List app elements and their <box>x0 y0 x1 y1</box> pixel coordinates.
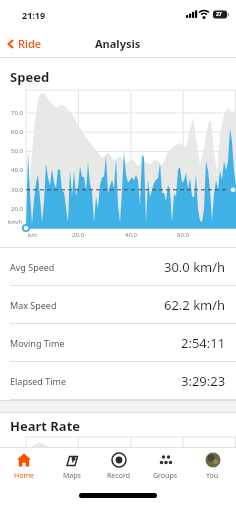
button[interactable]: Record <box>95 448 142 491</box>
staticText: Moving Time <box>10 337 65 349</box>
staticText: 30.0 km/h <box>164 258 226 276</box>
staticText: Speed <box>10 68 50 86</box>
staticText: Groups <box>153 471 178 481</box>
staticText: 60.0 <box>11 128 23 136</box>
staticText: Record <box>107 471 130 481</box>
button[interactable]: Ride <box>6 36 42 51</box>
staticText: 20.0 <box>11 205 23 213</box>
staticText: 70.0 <box>11 109 23 117</box>
staticText: Heart Rate <box>10 417 81 435</box>
button[interactable]: Max Speed <box>0 286 236 323</box>
staticText: km/h <box>8 218 23 226</box>
staticText: Elapsed Time <box>10 375 66 387</box>
staticText: Ride <box>18 36 42 51</box>
staticText: 21:19 <box>22 9 46 21</box>
button[interactable]: You <box>189 448 236 491</box>
button[interactable]: Groups <box>142 448 189 491</box>
staticText: Avg Speed <box>10 261 55 273</box>
button[interactable]: Home <box>0 448 48 491</box>
staticText: Analysis <box>95 36 141 51</box>
staticText: 50.0 <box>11 147 23 155</box>
staticText: 20.0 <box>72 231 84 239</box>
staticText: 60.0 <box>177 231 189 239</box>
staticText: 40.0 <box>125 231 137 239</box>
staticText: 2:54:11 <box>181 334 226 352</box>
staticText: km <box>28 231 37 239</box>
staticText: Max Speed <box>10 299 57 311</box>
button[interactable]: Maps <box>48 448 95 491</box>
staticText: 30.0 <box>11 186 23 194</box>
button[interactable]: Avg Speed <box>0 248 236 285</box>
staticText: Maps <box>63 471 81 481</box>
staticText: 62.2 km/h <box>164 296 226 314</box>
button[interactable]: Moving Time <box>0 324 236 361</box>
staticText: You <box>206 471 219 481</box>
button[interactable]: Elapsed Time <box>0 362 236 399</box>
staticText: 3:29:23 <box>181 372 226 390</box>
staticText: 40.0 <box>11 166 23 174</box>
staticText: 27 <box>216 11 222 18</box>
staticText: Home <box>14 471 34 481</box>
